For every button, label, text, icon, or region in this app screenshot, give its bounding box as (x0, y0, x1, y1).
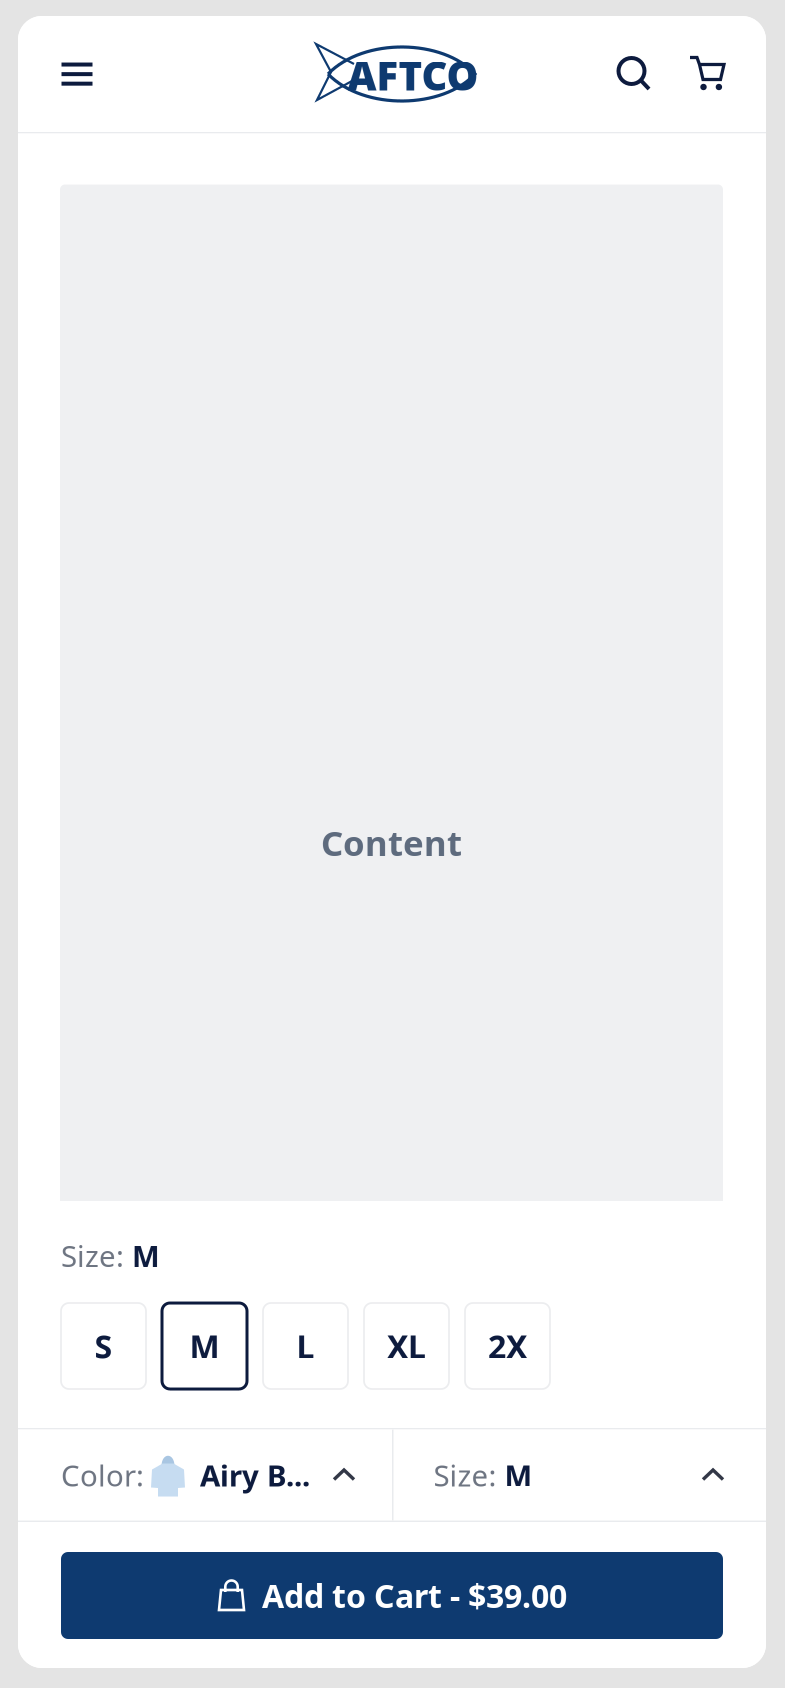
staticText: Color: (61, 1455, 144, 1494)
staticText: Size: (433, 1455, 504, 1494)
button[interactable]: Size: (393, 1429, 766, 1520)
staticText: M (132, 1236, 160, 1275)
button[interactable]: M (162, 1303, 247, 1389)
staticText: M (189, 1325, 219, 1367)
button[interactable]: Menu (35, 24, 119, 124)
staticText: M (504, 1455, 532, 1494)
button[interactable]: 2X (465, 1303, 550, 1389)
staticText: S (94, 1325, 112, 1367)
button[interactable]: AFTCO home (310, 24, 476, 124)
button[interactable]: Search (599, 24, 669, 124)
button[interactable]: Shopping cart (669, 24, 745, 124)
staticText: AFTCO (347, 48, 478, 101)
button[interactable]: Color: (18, 1429, 392, 1520)
staticText: 2X (488, 1325, 527, 1367)
staticText: Size: (61, 1236, 132, 1275)
staticText: L (296, 1325, 314, 1367)
button[interactable]: S (61, 1303, 146, 1389)
staticText: Airy B... (200, 1455, 310, 1494)
staticText: Add to Cart - $39.00 (262, 1574, 567, 1617)
button[interactable]: L (263, 1303, 348, 1389)
button[interactable]: XL (364, 1303, 449, 1389)
staticText: XL (387, 1325, 426, 1367)
staticText: Content (321, 819, 462, 865)
button[interactable]: Add to Cart - $39.00 (61, 1552, 723, 1639)
